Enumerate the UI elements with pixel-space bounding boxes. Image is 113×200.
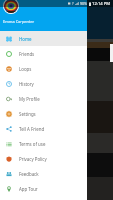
- staticText: Settings: [19, 111, 36, 117]
- staticText: Home: [19, 36, 32, 42]
- button[interactable]: Privacy Policy: [0, 151, 87, 166]
- button[interactable]: Tell A Friend: [0, 121, 87, 136]
- button[interactable]: App Tour: [0, 181, 87, 196]
- staticText: ?: [72, 1, 74, 6]
- staticText: Loops: [19, 66, 32, 72]
- staticText: Terms of use: [19, 141, 46, 147]
- button[interactable]: Loops: [0, 61, 87, 76]
- staticText: History: [19, 81, 34, 87]
- staticText: App Tour: [19, 186, 38, 192]
- staticText: Friends: [19, 51, 35, 57]
- button[interactable]: Home: [0, 31, 87, 46]
- button[interactable]: Terms of use: [0, 136, 87, 151]
- staticText: Privacy Policy: [19, 156, 47, 162]
- staticText: Feedback: [19, 171, 39, 177]
- staticText: Emma Carpenter: [3, 19, 35, 24]
- staticText: My Profile: [19, 96, 40, 102]
- button[interactable]: History: [0, 76, 87, 91]
- staticText: Tell A Friend: [19, 126, 45, 132]
- button[interactable]: Friends: [0, 46, 87, 61]
- button[interactable]: Settings: [0, 106, 87, 121]
- staticText: 12:14 PM: [92, 1, 111, 7]
- button[interactable]: My Profile: [0, 91, 87, 106]
- button[interactable]: Feedback: [0, 166, 87, 181]
- staticText: 90%: [80, 1, 88, 6]
